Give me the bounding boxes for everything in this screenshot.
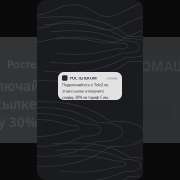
button[interactable]: РОСТЕЛЕКОМ bbox=[58, 72, 122, 100]
staticText: ДОМАШНИЙ bbox=[131, 57, 180, 75]
staticText: сейчас bbox=[106, 75, 118, 81]
staticText: скидку 30% bbox=[0, 113, 37, 131]
staticText: Ростелеком bbox=[7, 57, 70, 71]
staticText: по ссылке bbox=[0, 95, 37, 113]
button[interactable]: Previous story bbox=[0, 37, 50, 143]
button[interactable]: Next story bbox=[130, 37, 180, 143]
staticText: РОСТЕЛЕКОМ bbox=[70, 75, 97, 81]
staticText: скидку 30% на тариф Сим. bbox=[62, 95, 109, 100]
staticText: Подключай bbox=[0, 77, 40, 95]
staticText: Подключайтесь к Tele2 по bbox=[62, 82, 108, 87]
staticText: этой ссылке и получите bbox=[62, 88, 104, 94]
